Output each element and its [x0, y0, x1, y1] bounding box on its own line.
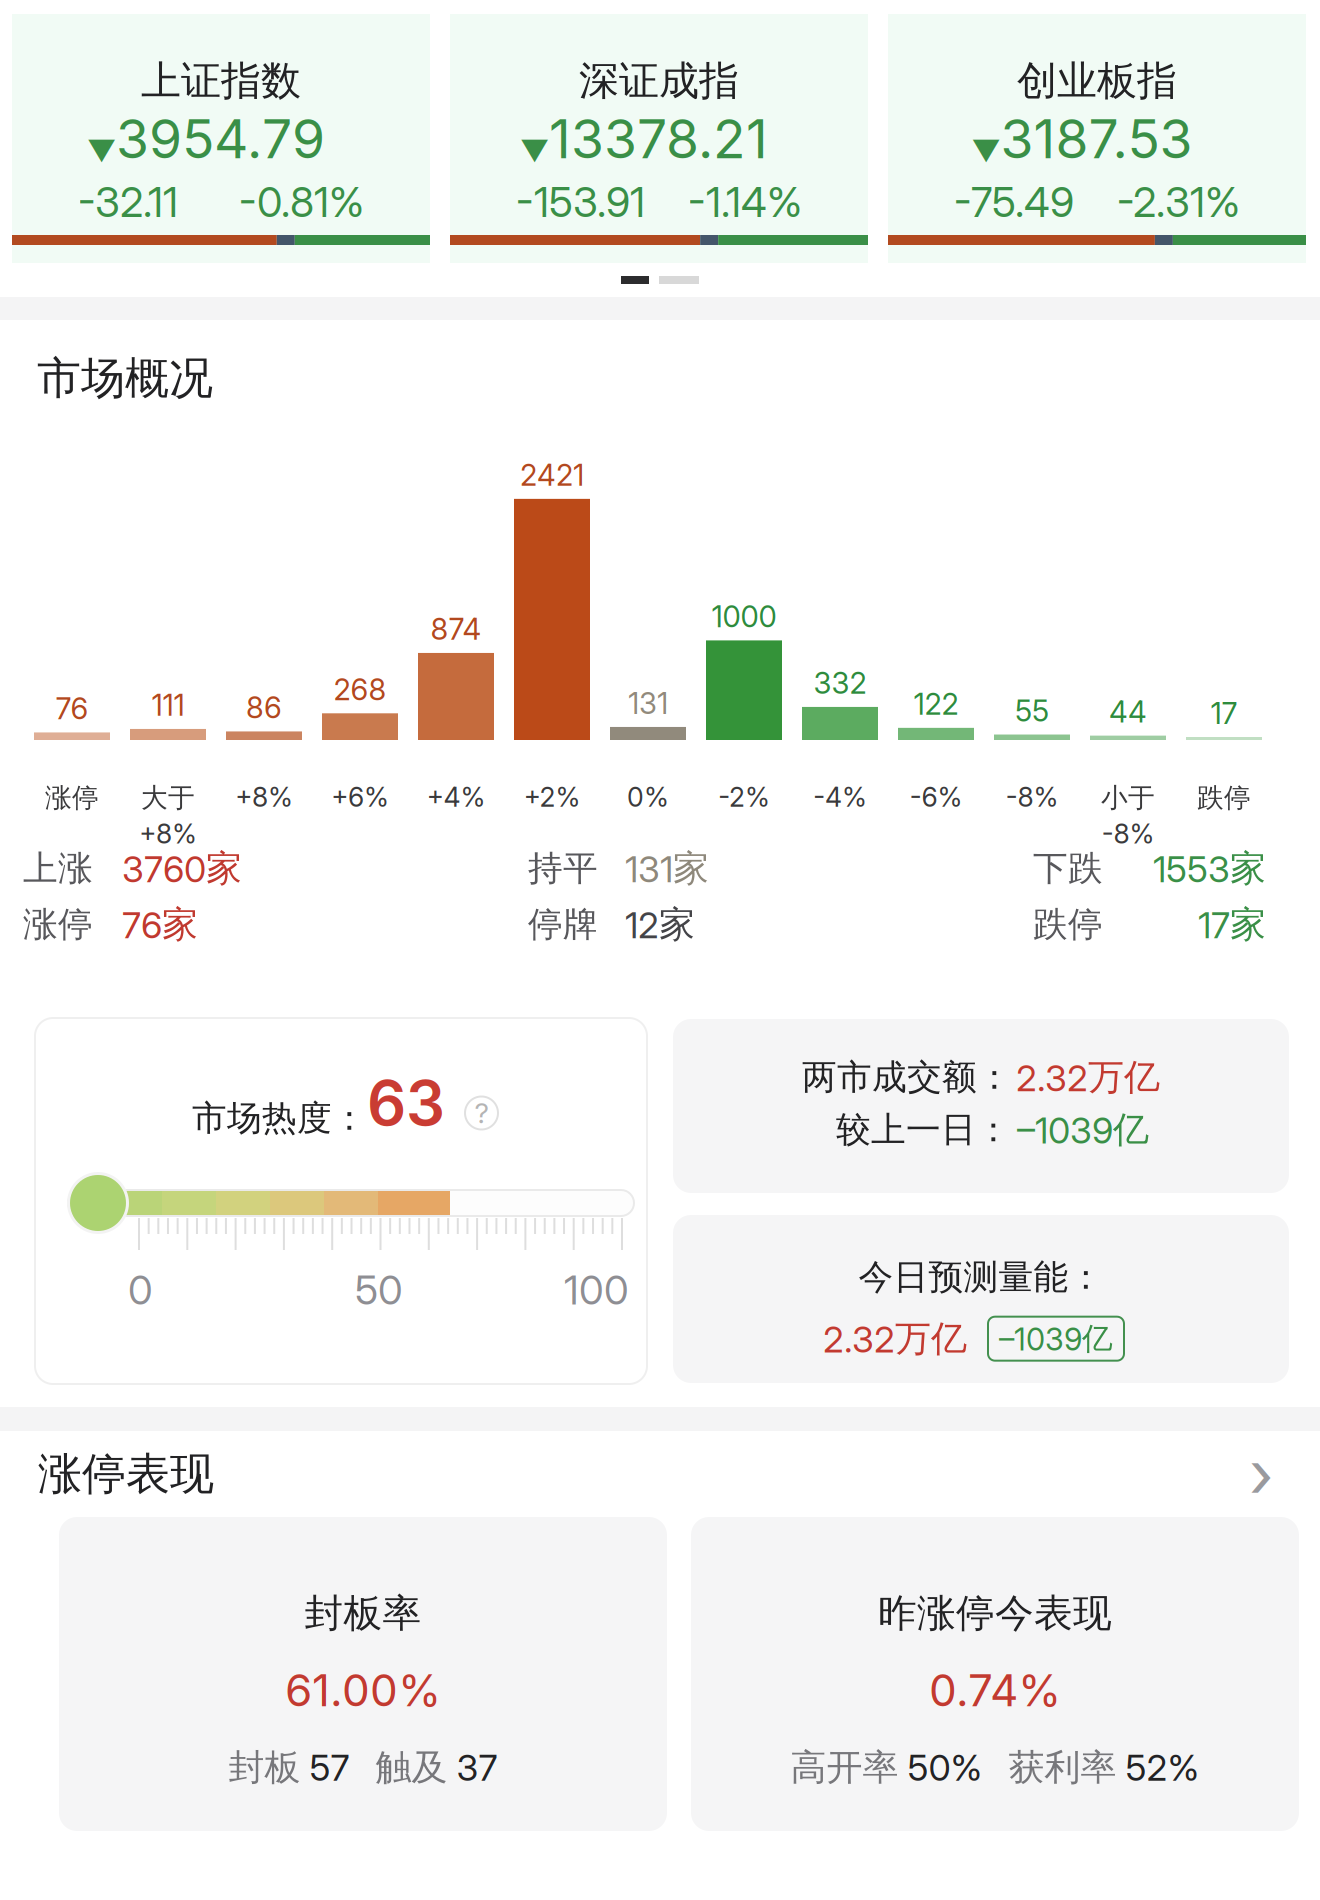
- staticText: –1039亿: [1017, 1107, 1149, 1152]
- staticText: 昨涨停今表现: [878, 1589, 1112, 1638]
- staticText: -75.49: [954, 177, 1074, 227]
- button[interactable]: 两市成交额：: [673, 1019, 1289, 1193]
- staticText: ▼: [87, 132, 116, 168]
- staticText: 涨停表现: [38, 1446, 214, 1502]
- staticText: 131家: [625, 846, 709, 891]
- staticText: 52%: [1125, 1746, 1199, 1789]
- button[interactable]: 上证指数: [12, 14, 430, 263]
- staticText: 111: [151, 687, 184, 723]
- staticText: 1000: [711, 599, 776, 634]
- button[interactable]: 昨涨停今表现: [691, 1517, 1299, 1831]
- staticText: 涨停: [23, 903, 93, 946]
- staticText: 小于: [1101, 781, 1155, 815]
- staticText: 上涨: [23, 847, 93, 890]
- staticText: 创业板指: [1017, 56, 1177, 106]
- button[interactable]: 市场热度：: [35, 1018, 647, 1384]
- staticText: –1039亿: [999, 1319, 1113, 1358]
- button[interactable]: 今日预测量能：: [673, 1215, 1289, 1383]
- staticText: +8%: [139, 818, 197, 850]
- staticText: 跌停: [1033, 903, 1103, 946]
- staticText: 市场概况: [37, 351, 213, 406]
- staticText: 13378.21: [549, 106, 768, 171]
- button[interactable]: 封板率: [59, 1517, 667, 1831]
- staticText: -8%: [1005, 781, 1058, 813]
- staticText: 0%: [627, 781, 669, 813]
- staticText: -2.31%: [1117, 177, 1240, 227]
- staticText: -0.81%: [239, 177, 364, 227]
- staticText: ▼: [971, 132, 1000, 168]
- staticText: 17家: [1198, 902, 1266, 947]
- staticText: 268: [333, 672, 386, 707]
- staticText: 上证指数: [141, 56, 301, 106]
- staticText: 131: [628, 685, 668, 721]
- staticText: 0.74%: [929, 1664, 1061, 1717]
- button[interactable]: 深证成指: [450, 14, 868, 263]
- staticText: 63: [367, 1066, 445, 1140]
- staticText: 2.32万亿: [823, 1316, 967, 1361]
- staticText: 跌停: [1197, 781, 1251, 815]
- staticText: ?: [474, 1096, 488, 1130]
- staticText: 两市成交额：: [802, 1055, 1012, 1099]
- staticText: 市场热度：: [192, 1096, 367, 1140]
- staticText: 76家: [122, 902, 198, 947]
- staticText: 50: [355, 1266, 403, 1314]
- staticText: 3760家: [122, 846, 242, 891]
- staticText: -32.11: [78, 177, 178, 227]
- staticText: 涨停: [45, 781, 99, 815]
- button[interactable]: 创业板指: [888, 14, 1306, 263]
- staticText: 封板率: [304, 1589, 421, 1638]
- staticText: 76: [55, 691, 88, 726]
- staticText: -2%: [718, 781, 770, 813]
- staticText: ▼: [520, 132, 549, 168]
- staticText: 持平: [528, 847, 598, 890]
- staticText: 874: [430, 611, 481, 647]
- staticText: 今日预测量能：: [858, 1255, 1103, 1299]
- staticText: 较上一日：: [836, 1108, 1011, 1151]
- staticText: 44: [1109, 694, 1147, 730]
- staticText: 2.32万亿: [1016, 1055, 1160, 1100]
- staticText: 0: [128, 1266, 153, 1314]
- staticText: 高开率: [790, 1745, 898, 1790]
- staticText: 触及: [375, 1745, 447, 1790]
- staticText: +4%: [426, 781, 485, 813]
- staticText: 61.00%: [285, 1664, 441, 1717]
- staticText: ›: [1249, 1435, 1274, 1513]
- staticText: 86: [246, 690, 282, 725]
- staticText: 100: [564, 1266, 629, 1314]
- staticText: 深证成指: [579, 56, 739, 106]
- staticText: +8%: [235, 781, 293, 813]
- staticText: 大于: [141, 781, 195, 815]
- staticText: -153.91: [516, 177, 645, 227]
- staticText: 3187.53: [1000, 106, 1192, 171]
- staticText: 1553家: [1153, 846, 1266, 891]
- staticText: 17: [1210, 695, 1237, 731]
- staticText: -4%: [813, 781, 867, 813]
- staticText: 122: [913, 686, 958, 722]
- staticText: 37: [456, 1746, 497, 1789]
- staticText: -8%: [1101, 818, 1154, 850]
- staticText: 3954.79: [116, 106, 325, 171]
- staticText: +6%: [331, 781, 389, 813]
- staticText: 50%: [907, 1746, 982, 1789]
- staticText: 12家: [625, 902, 695, 947]
- staticText: 332: [813, 665, 866, 701]
- staticText: 55: [1015, 693, 1049, 728]
- staticText: -6%: [909, 781, 962, 813]
- button[interactable]: 涨停表现: [0, 1431, 1320, 1517]
- staticText: 57: [309, 1746, 349, 1789]
- staticText: 下跌: [1033, 847, 1103, 890]
- staticText: 获利率: [1008, 1745, 1116, 1790]
- staticText: 停牌: [528, 903, 598, 946]
- staticText: 封板: [228, 1745, 300, 1790]
- staticText: 2421: [520, 457, 584, 493]
- staticText: -1.14%: [688, 177, 802, 227]
- staticText: +2%: [523, 781, 580, 813]
